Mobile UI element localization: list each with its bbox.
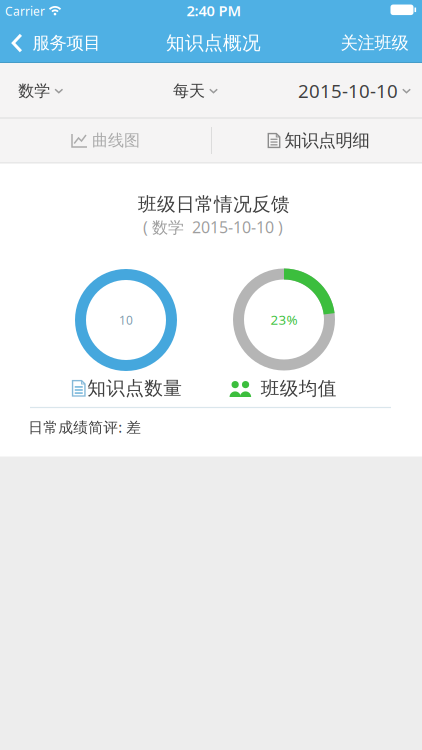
staticText: 曲线图 — [92, 131, 140, 150]
staticText: 数学 — [18, 81, 50, 101]
staticText: 知识点明细 — [284, 130, 369, 151]
staticText: 每天 — [173, 81, 205, 101]
staticText: 班级日常情况反馈 — [138, 193, 290, 216]
staticText: 服务项目 — [32, 32, 100, 54]
staticText: 2:40 PM — [186, 1, 241, 20]
button[interactable]: 知识点明细 — [213, 118, 422, 162]
staticText: 10 — [119, 312, 133, 328]
staticText: 2015-10-10 — [298, 78, 398, 103]
staticText: Carrier — [5, 3, 45, 19]
button[interactable]: 曲线图 — [0, 118, 210, 162]
staticText: 关注班级 — [340, 32, 408, 54]
button[interactable]: 每天 — [173, 63, 218, 118]
staticText: 知识点数量 — [87, 377, 182, 400]
button[interactable]: 服务项目 — [11, 22, 100, 63]
staticText: 班级均值 — [261, 377, 337, 400]
button[interactable]: 数学 — [18, 63, 63, 118]
staticText: 日常成绩简评: 差 — [28, 417, 141, 437]
button[interactable]: 关注班级 — [340, 22, 408, 63]
staticText: ( 数学 2015-10-10 ) — [143, 216, 283, 238]
staticText: 知识点概况 — [166, 31, 261, 54]
staticText: 23% — [270, 311, 297, 328]
button[interactable]: 2015-10-10 — [298, 63, 411, 118]
